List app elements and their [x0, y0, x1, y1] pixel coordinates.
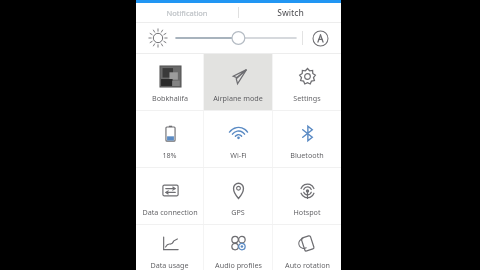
button[interactable]: Auto rotation [273, 225, 341, 270]
staticText: Hotspot [293, 207, 321, 217]
button[interactable]: Hotspot [273, 168, 341, 224]
staticText: Bobkhalifa [152, 93, 188, 103]
staticText: Data usage [150, 260, 189, 270]
button[interactable]: 18% [136, 111, 203, 167]
button[interactable] [176, 23, 296, 53]
button[interactable]: Data connection [136, 168, 203, 224]
button[interactable]: Data usage [136, 225, 203, 270]
staticText: GPS [231, 207, 245, 217]
staticText: Airplane mode [213, 93, 263, 103]
button[interactable]: Bobkhalifa [136, 54, 203, 110]
button[interactable]: GPS [204, 168, 272, 224]
button[interactable]: Airplane mode [204, 54, 272, 110]
staticText: Wi-Fi [230, 150, 247, 160]
staticText: Data connection [142, 207, 198, 217]
staticText: Audio profiles [215, 260, 262, 270]
button[interactable]: Notification [136, 3, 238, 22]
button[interactable]: Settings [273, 54, 341, 110]
staticText: 18% [162, 150, 177, 160]
button[interactable]: Switch [239, 3, 341, 22]
staticText: Switch [277, 7, 304, 19]
button[interactable]: Bluetooth [273, 111, 341, 167]
button[interactable]: Audio profiles [204, 225, 272, 270]
button[interactable]: Auto brightness [309, 27, 331, 49]
staticText: Auto rotation [285, 260, 330, 270]
button[interactable]: Brightness [148, 28, 168, 48]
staticText: Notification [166, 8, 208, 18]
staticText: Settings [293, 93, 321, 103]
button[interactable]: Wi-Fi [204, 111, 272, 167]
staticText: Bluetooth [290, 150, 324, 160]
